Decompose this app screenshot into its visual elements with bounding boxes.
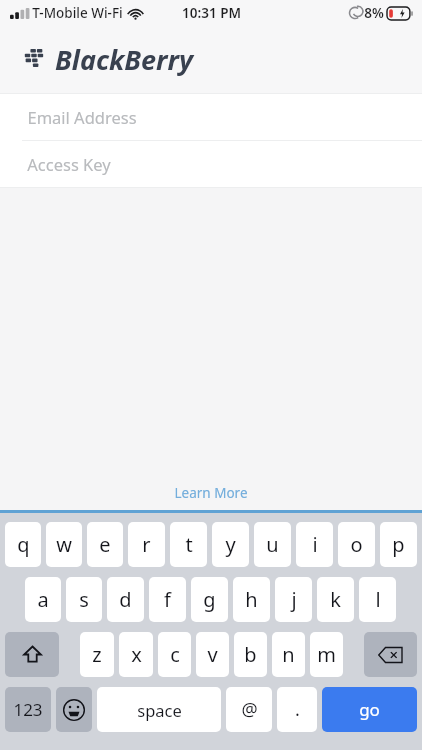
staticText: z [92, 641, 102, 668]
staticText: y [225, 531, 236, 558]
button[interactable]: m [310, 632, 343, 677]
staticText: @ [241, 697, 258, 722]
staticText: j [291, 586, 297, 613]
button[interactable]: j [275, 577, 312, 622]
staticText: space [137, 699, 182, 721]
button[interactable]: . [277, 687, 317, 732]
button[interactable]: w [46, 522, 82, 567]
staticText: Learn More [174, 484, 248, 502]
staticText: v [207, 641, 218, 668]
staticText: g [203, 586, 216, 613]
button[interactable]: g [191, 577, 228, 622]
button[interactable]: 123 [5, 687, 51, 732]
button[interactable]: i [296, 522, 333, 567]
button[interactable]: Emoji [56, 687, 92, 732]
staticText: . [295, 697, 300, 722]
button[interactable]: a [25, 577, 61, 622]
button[interactable]: v [196, 632, 229, 677]
staticText: r [142, 531, 151, 558]
button[interactable]: Backspace [364, 632, 417, 677]
button[interactable]: x [119, 632, 153, 677]
button[interactable]: k [317, 577, 354, 622]
staticText: x [131, 641, 142, 668]
button[interactable]: c [158, 632, 191, 677]
staticText: l [375, 586, 381, 613]
button[interactable]: Access Key [0, 141, 422, 187]
staticText: f [164, 586, 171, 613]
staticText: s [79, 586, 89, 613]
button[interactable]: z [80, 632, 114, 677]
button[interactable]: u [254, 522, 291, 567]
button[interactable]: h [233, 577, 270, 622]
button[interactable]: Email Address [0, 94, 422, 140]
staticText: i [312, 531, 318, 558]
button[interactable]: @ [226, 687, 272, 732]
staticText: n [282, 641, 295, 668]
staticText: w [56, 531, 72, 558]
staticText: b [244, 641, 257, 668]
staticText: go [359, 698, 380, 721]
staticText: o [350, 531, 363, 558]
button[interactable]: d [107, 577, 144, 622]
staticText: h [245, 586, 258, 613]
button[interactable]: q [5, 522, 41, 567]
button[interactable]: o [338, 522, 375, 567]
button[interactable]: e [87, 522, 123, 567]
button[interactable]: l [359, 577, 396, 622]
button[interactable]: space [97, 687, 221, 732]
button[interactable]: r [128, 522, 165, 567]
staticText: T-Mobile Wi-Fi [32, 4, 123, 22]
button[interactable]: f [149, 577, 186, 622]
button[interactable]: t [170, 522, 207, 567]
staticText: a [37, 586, 49, 613]
staticText: d [119, 586, 132, 613]
staticText: 123 [13, 698, 43, 721]
button[interactable]: y [212, 522, 249, 567]
staticText: Email Address [27, 106, 137, 128]
staticText: q [17, 531, 30, 558]
staticText: c [170, 641, 180, 668]
staticText: e [99, 531, 111, 558]
staticText: 8% [364, 4, 384, 22]
staticText: u [266, 531, 279, 558]
staticText: k [330, 586, 341, 613]
staticText: p [392, 531, 405, 558]
staticText: 10:31 PM [182, 4, 241, 22]
button[interactable]: s [66, 577, 102, 622]
staticText: t [185, 531, 193, 558]
staticText: BlackBerry [55, 41, 193, 78]
staticText: m [317, 641, 336, 668]
button[interactable]: b [234, 632, 267, 677]
button[interactable]: n [272, 632, 305, 677]
button[interactable]: go [322, 687, 417, 732]
button[interactable]: Learn More [162, 480, 260, 506]
staticText: Access Key [27, 153, 111, 175]
button[interactable]: Shift [5, 632, 59, 677]
button[interactable]: p [380, 522, 417, 567]
